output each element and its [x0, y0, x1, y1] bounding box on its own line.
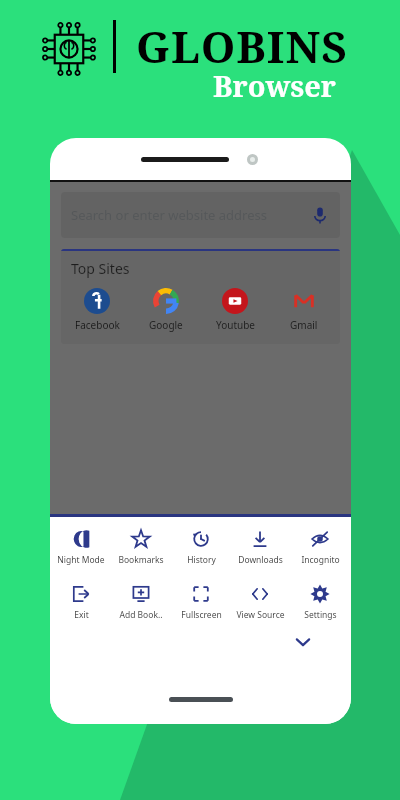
button[interactable]: Settings	[291, 582, 349, 623]
button[interactable]: Night Mode	[52, 527, 110, 568]
staticText: History	[187, 554, 216, 566]
button[interactable]: View Source	[231, 582, 289, 623]
button[interactable]: Add Book..	[112, 582, 170, 623]
other: Voice search	[310, 205, 330, 225]
staticText: Search or enter website address	[71, 206, 267, 224]
staticText: Downloads	[238, 554, 283, 566]
button[interactable]: Collapse menu	[292, 631, 314, 653]
button[interactable]: Exit	[52, 582, 110, 623]
button[interactable]: Incognito	[291, 527, 349, 568]
button[interactable]: Google	[133, 286, 199, 334]
button[interactable]: Gmail	[271, 286, 337, 334]
button[interactable]: Search or enter website address	[61, 192, 340, 238]
staticText: Browser	[213, 66, 336, 105]
staticText: GLOBINS	[136, 16, 348, 76]
button[interactable]: Downloads	[231, 527, 289, 568]
staticText: Exit	[74, 609, 89, 621]
staticText: Night Mode	[57, 554, 105, 566]
staticText: Gmail	[290, 318, 318, 332]
button[interactable]: Facebook	[64, 286, 130, 334]
button[interactable]: Youtube	[202, 286, 268, 334]
staticText: Incognito	[301, 554, 340, 566]
staticText: Fullscreen	[181, 609, 222, 621]
button[interactable]: History	[172, 527, 230, 568]
staticText: View Source	[236, 609, 285, 621]
button[interactable]: Fullscreen	[172, 582, 230, 623]
staticText: Youtube	[216, 318, 255, 332]
staticText: Add Book..	[119, 609, 163, 621]
staticText: Top Sites	[71, 259, 130, 278]
staticText: Facebook	[75, 318, 120, 332]
button[interactable]: Bookmarks	[112, 527, 170, 568]
staticText: Settings	[304, 609, 337, 621]
staticText: Google	[149, 318, 183, 332]
staticText: Bookmarks	[118, 554, 164, 566]
